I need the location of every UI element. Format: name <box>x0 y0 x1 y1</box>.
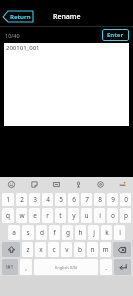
staticText: d <box>40 228 44 237</box>
button[interactable]: . <box>100 259 112 275</box>
staticText: j <box>93 228 95 237</box>
staticText: s <box>26 228 30 237</box>
staticText: , <box>25 263 27 272</box>
button[interactable]: v <box>61 242 72 257</box>
button[interactable]: 4 <box>42 193 53 206</box>
button[interactable]: t <box>55 208 66 223</box>
button[interactable]: English (US) <box>34 259 98 275</box>
staticText: Enter <box>107 31 124 39</box>
button[interactable]: f <box>49 225 60 240</box>
staticText: i <box>99 211 101 220</box>
button[interactable]: Shift <box>2 242 20 257</box>
button[interactable]: x <box>35 242 46 257</box>
button[interactable]: n <box>87 242 98 257</box>
staticText: l <box>119 228 121 237</box>
button[interactable]: i <box>94 208 105 223</box>
staticText: 200101_001 <box>6 44 40 52</box>
staticText: k <box>105 228 109 237</box>
button[interactable]: Stickers <box>23 177 45 192</box>
staticText: z <box>26 245 30 254</box>
button[interactable]: 6 <box>68 193 79 206</box>
staticText: b <box>78 245 82 254</box>
staticText: 6 <box>72 195 76 204</box>
staticText: !#1 <box>6 264 14 271</box>
button[interactable]: Clipboard <box>45 177 67 192</box>
button[interactable]: Return <box>3 11 34 23</box>
button[interactable]: u <box>81 208 92 223</box>
button[interactable]: y <box>68 208 79 223</box>
button[interactable]: l <box>114 225 125 240</box>
button[interactable]: r <box>42 208 53 223</box>
staticText: Return <box>10 13 31 21</box>
staticText: c <box>52 245 56 254</box>
button[interactable]: j <box>88 225 99 240</box>
staticText: 2 <box>20 195 24 204</box>
button[interactable]: s <box>22 225 34 240</box>
staticText: Rename <box>53 12 81 22</box>
button[interactable]: 8 <box>94 193 105 206</box>
button[interactable]: a <box>8 225 20 240</box>
button[interactable]: Hide keyboard <box>111 177 133 192</box>
button[interactable]: d <box>36 225 47 240</box>
button[interactable]: m <box>100 242 111 257</box>
button[interactable]: c <box>48 242 59 257</box>
staticText: f <box>53 228 56 237</box>
button[interactable]: Backspace <box>113 242 131 257</box>
button[interactable]: 200101_001 <box>4 43 129 126</box>
staticText: 8 <box>98 195 102 204</box>
button[interactable]: 5 <box>55 193 66 206</box>
button[interactable]: , <box>20 259 32 275</box>
staticText: r <box>46 211 49 220</box>
staticText: n <box>90 245 95 254</box>
staticText: 3 <box>33 195 37 204</box>
staticText: p <box>124 211 128 220</box>
staticText: x <box>39 245 43 254</box>
staticText: a <box>12 228 16 237</box>
button[interactable]: Enter <box>114 259 131 275</box>
button[interactable]: e <box>29 208 40 223</box>
button[interactable]: 1 <box>2 193 14 206</box>
staticText: w <box>19 211 25 220</box>
staticText: u <box>84 211 89 220</box>
staticText: g <box>66 228 70 237</box>
staticText: 9 <box>111 195 115 204</box>
staticText: e <box>33 211 37 220</box>
button[interactable]: 0 <box>120 193 131 206</box>
staticText: v <box>65 245 69 254</box>
staticText: y <box>72 211 76 220</box>
staticText: 7 <box>85 195 89 204</box>
button[interactable]: o <box>107 208 118 223</box>
button[interactable]: z <box>22 242 33 257</box>
staticText: . <box>105 263 107 272</box>
staticText: 10/40 <box>5 32 20 39</box>
button[interactable]: 9 <box>107 193 118 206</box>
button[interactable]: k <box>101 225 112 240</box>
staticText: 0 <box>124 195 128 204</box>
staticText: o <box>111 211 115 220</box>
button[interactable]: p <box>120 208 131 223</box>
staticText: 1 <box>6 195 10 204</box>
button[interactable]: Voice input <box>67 177 89 192</box>
staticText: 4 <box>46 195 50 204</box>
button[interactable]: h <box>75 225 86 240</box>
button[interactable]: Settings <box>89 177 111 192</box>
button[interactable]: Emoji <box>0 177 23 192</box>
button[interactable]: 7 <box>81 193 92 206</box>
staticText: 5 <box>59 195 63 204</box>
button[interactable]: q <box>2 208 14 223</box>
button[interactable]: b <box>74 242 85 257</box>
staticText: t <box>59 211 62 220</box>
button[interactable]: w <box>16 208 27 223</box>
button[interactable]: Enter <box>102 29 129 41</box>
button[interactable]: Symbols <box>2 259 18 275</box>
button[interactable]: 2 <box>16 193 27 206</box>
staticText: q <box>6 211 10 220</box>
button[interactable]: g <box>62 225 73 240</box>
staticText: English (US) <box>55 265 78 270</box>
button[interactable]: 3 <box>29 193 40 206</box>
staticText: h <box>78 228 83 237</box>
staticText: m <box>102 245 109 254</box>
